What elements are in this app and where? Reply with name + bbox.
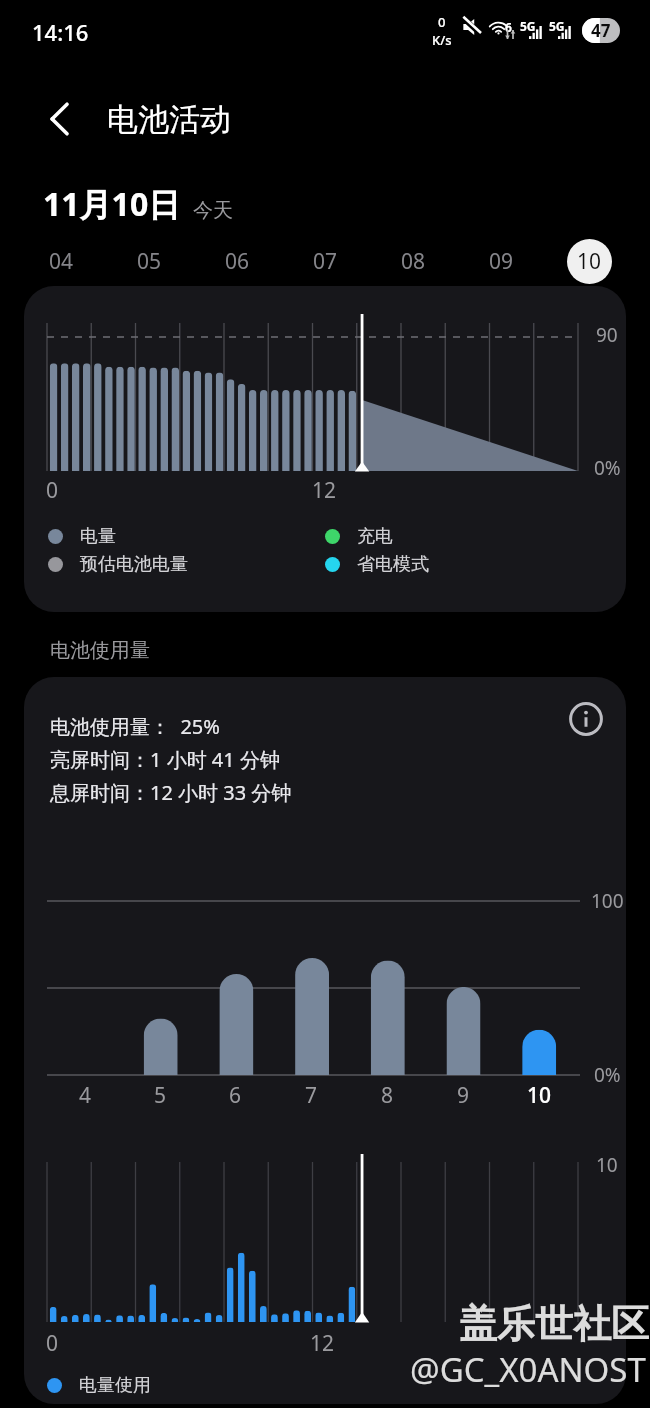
button[interactable]: 电量使用: [47, 1372, 151, 1398]
staticText: 亮屏时间：1 小时 41 分钟: [50, 746, 280, 773]
staticText: 今天: [193, 198, 233, 223]
staticText: 息屏时间：12 小时 33 分钟: [50, 779, 292, 806]
staticText: 11月10日: [43, 182, 181, 226]
button[interactable]: 09: [457, 238, 545, 284]
staticText: 8: [381, 1081, 394, 1110]
staticText: 04: [49, 247, 74, 276]
staticText: 盖乐世社区: [459, 1300, 649, 1348]
button[interactable]: 06: [193, 238, 281, 284]
staticText: 0: [438, 13, 446, 31]
staticText: 4: [79, 1081, 92, 1110]
staticText: 0%: [594, 455, 621, 481]
staticText: 电量使用: [79, 1374, 151, 1397]
staticText: 14:16: [32, 17, 89, 47]
staticText: 6: [505, 19, 512, 35]
staticText: 电池使用量: [50, 638, 150, 663]
staticText: 10: [577, 247, 602, 276]
staticText: 0: [46, 1329, 59, 1358]
staticText: 9: [457, 1081, 470, 1110]
button[interactable]: 07: [281, 238, 369, 284]
staticText: 09: [489, 247, 514, 276]
button[interactable]: 充电: [325, 523, 393, 549]
staticText: 07: [313, 247, 338, 276]
button[interactable]: Back: [32, 92, 88, 146]
button[interactable]: 05: [105, 238, 193, 284]
staticText: 10: [527, 1081, 552, 1110]
staticText: 47: [591, 19, 611, 42]
staticText: 05: [137, 247, 162, 276]
staticText: 0%: [594, 1062, 621, 1088]
staticText: 6: [229, 1081, 242, 1110]
staticText: 12: [312, 476, 337, 505]
staticText: 12: [310, 1329, 335, 1358]
button[interactable]: 省电模式: [325, 551, 429, 577]
staticText: 06: [225, 247, 250, 276]
button[interactable]: 预估电池电量: [48, 551, 188, 577]
staticText: 08: [401, 247, 426, 276]
button[interactable]: 04: [17, 238, 105, 284]
staticText: 电池活动: [107, 100, 231, 139]
staticText: K/s: [432, 31, 452, 49]
staticText: 100: [591, 888, 624, 914]
staticText: 电池使用量： 25%: [50, 713, 220, 740]
staticText: 5G: [549, 18, 565, 34]
staticText: 5: [154, 1081, 167, 1110]
button[interactable]: 电量: [48, 523, 116, 549]
button[interactable]: 10: [545, 238, 633, 284]
staticText: 5G: [520, 18, 536, 34]
staticText: 省电模式: [357, 553, 429, 576]
staticText: 电量: [80, 525, 116, 548]
staticText: 10: [596, 1152, 618, 1178]
staticText: @GC_X0ANOST: [410, 1347, 646, 1392]
button[interactable]: 08: [369, 238, 457, 284]
staticText: 预估电池电量: [80, 553, 188, 576]
staticText: 7: [305, 1081, 318, 1110]
staticText: 充电: [357, 525, 393, 548]
staticText: 0: [46, 476, 59, 505]
staticText: 90: [596, 322, 618, 348]
button[interactable]: Info: [561, 694, 610, 743]
